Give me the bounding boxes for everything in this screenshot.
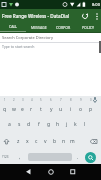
staticText: 2 [13,98,15,102]
staticText: z [17,138,20,145]
staticText: 8:00 [92,2,100,7]
button[interactable]: z [13,132,23,150]
staticText: CALL [9,24,18,29]
button[interactable] [42,164,60,180]
button[interactable]: m [68,132,77,150]
staticText: v [44,138,47,145]
staticText: f [38,121,40,128]
staticText: Free Range Wireless - DataDial [2,13,70,19]
staticText: y [50,106,53,113]
staticText: 0 [90,98,92,102]
staticText: u [59,106,63,113]
button[interactable]: w [9,103,18,116]
staticText: b [53,138,57,145]
staticText: r [30,106,33,113]
staticText: q [3,106,7,113]
button[interactable]: l [80,116,89,132]
button[interactable]: e [18,103,27,116]
staticText: k [74,121,77,128]
staticText: 5 [40,98,42,102]
staticText: p [89,106,93,113]
staticText: d [27,121,31,128]
button[interactable] [19,164,37,180]
staticText: x [26,138,29,145]
button[interactable] [0,132,13,150]
button[interactable]: a [4,116,14,132]
button[interactable]: g [44,116,53,132]
button[interactable]: r [27,103,36,116]
button[interactable] [80,11,90,21]
staticText: h [56,121,60,128]
button[interactable] [85,152,96,163]
staticText: 7 [60,98,62,102]
staticText: o [79,106,83,113]
button[interactable]: f [34,116,44,132]
button[interactable] [93,11,100,21]
button[interactable]: MESSAGE [26,22,51,32]
staticText: a [8,121,11,128]
button[interactable]: k [71,116,80,132]
button[interactable]: n [59,132,68,150]
button[interactable]: d [24,116,34,132]
button[interactable] [85,132,101,150]
button[interactable]: y [46,103,56,116]
button[interactable]: s [14,116,24,132]
staticText: 1 [4,98,6,102]
staticText: m [70,138,75,145]
button[interactable]: c [32,132,41,150]
staticText: t [40,106,42,113]
staticText: i [70,106,72,113]
button[interactable]: POLICY [76,22,101,32]
button[interactable]: q [0,103,9,116]
staticText: 6 [50,98,52,102]
staticText: j [66,121,68,128]
staticText: POLICY [82,25,95,30]
staticText: w [12,106,16,113]
staticText: l [84,121,86,128]
staticText: e [21,106,24,113]
staticText: CORPOR [56,25,71,30]
button[interactable]: j [62,116,71,132]
button[interactable]: i [66,103,76,116]
button[interactable]: b [50,132,59,150]
button[interactable]: t [36,103,46,116]
staticText: c [35,138,38,145]
staticText: 8 [70,98,72,102]
button[interactable]: ?123 [2,155,9,159]
button[interactable] [64,164,82,180]
staticText: n [62,138,66,145]
staticText: , [19,154,21,161]
staticText: MESSAGE [31,25,47,30]
staticText: s [18,121,21,128]
staticText: . [77,154,79,161]
button[interactable]: CORPOR [51,22,76,32]
button[interactable]: v [41,132,50,150]
staticText: 3 [22,98,24,102]
staticText: ?123 [2,155,9,159]
button[interactable]: CALL [0,22,26,32]
button[interactable]: u [56,103,66,116]
button[interactable]: o [76,103,86,116]
button[interactable]: Type to start search [2,44,35,49]
button[interactable]: p [86,103,96,116]
button[interactable]: x [23,132,32,150]
button[interactable]: h [53,116,62,132]
staticText: g [47,121,51,128]
staticText: 9 [80,98,82,102]
staticText: Search Corporate Directory [2,35,53,40]
staticText: 4 [31,98,33,102]
